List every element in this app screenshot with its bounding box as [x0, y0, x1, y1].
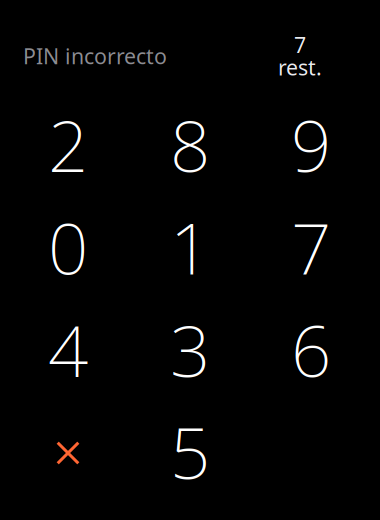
- staticText: 7: [294, 31, 306, 59]
- button[interactable]: Cancel: [7, 400, 129, 502]
- button[interactable]: 9: [250, 93, 372, 195]
- staticText: 4: [48, 303, 88, 396]
- staticText: rest.: [278, 53, 322, 81]
- button[interactable]: 2: [7, 93, 129, 195]
- staticText: 7: [291, 200, 331, 294]
- staticText: 6: [291, 303, 331, 396]
- button[interactable]: 7: [250, 196, 372, 298]
- staticText: 3: [170, 303, 210, 396]
- button[interactable]: 5: [129, 400, 251, 502]
- button[interactable]: 8: [129, 93, 251, 195]
- button[interactable]: 1: [129, 196, 251, 298]
- button[interactable]: 3: [129, 298, 251, 400]
- staticText: 2: [48, 98, 88, 191]
- staticText: 1: [170, 200, 210, 294]
- button[interactable]: 4: [7, 298, 129, 400]
- staticText: PIN incorrecto: [23, 42, 167, 70]
- button[interactable]: 6: [250, 298, 372, 400]
- staticText: 8: [170, 98, 210, 191]
- button[interactable]: 0: [7, 196, 129, 298]
- staticText: 0: [48, 200, 88, 294]
- staticText: 9: [291, 98, 331, 191]
- staticText: 5: [170, 405, 210, 498]
